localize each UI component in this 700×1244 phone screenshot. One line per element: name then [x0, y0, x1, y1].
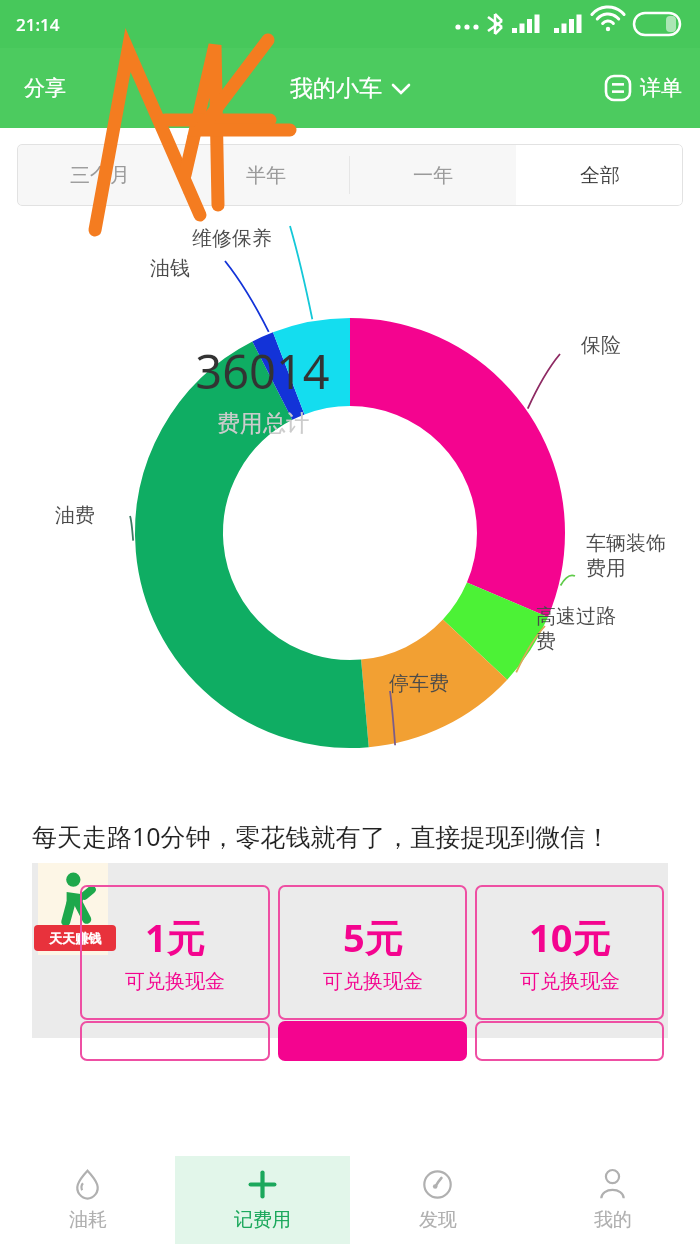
staticText: 三个月 — [70, 163, 130, 188]
staticText: 半年 — [246, 163, 286, 188]
staticText: 发现 — [419, 1208, 457, 1232]
staticText: 一年 — [413, 163, 453, 188]
staticText: 费 — [536, 629, 556, 654]
staticText: 车辆装饰 — [586, 531, 666, 556]
button[interactable]: 一年 — [349, 144, 516, 206]
staticText: 10元 — [529, 911, 611, 963]
staticText: 高速过路 — [536, 604, 616, 629]
button[interactable]: 全部 — [516, 144, 683, 206]
staticText: 记费用 — [234, 1208, 291, 1232]
button[interactable]: 发现 — [350, 1156, 525, 1244]
staticText: 油费 — [55, 503, 95, 528]
staticText: 油钱 — [150, 256, 190, 281]
button[interactable]: 我的小车 — [282, 66, 418, 111]
button[interactable]: 每天走路10分钟，零花钱就有了，直接提现到微信！ — [32, 819, 668, 853]
button[interactable]: 油耗 — [0, 1156, 175, 1244]
staticText: 停车费 — [389, 671, 449, 696]
staticText: 维修保养 — [192, 226, 272, 251]
staticText: 5元 — [343, 911, 403, 963]
staticText: 21:14 — [16, 13, 60, 36]
staticText: 可兑换现金 — [125, 969, 225, 994]
staticText: 可兑换现金 — [323, 969, 423, 994]
button[interactable]: 记费用 — [175, 1156, 350, 1244]
button[interactable]: 天天赚钱 — [32, 863, 668, 1038]
button[interactable]: 5元 — [278, 885, 467, 1020]
staticText: 油耗 — [69, 1208, 107, 1232]
button[interactable]: 我的 — [525, 1156, 700, 1244]
button[interactable]: 1元 — [80, 885, 270, 1020]
staticText: 1元 — [145, 911, 205, 963]
staticText: 详单 — [640, 75, 682, 101]
button[interactable]: 分享 — [0, 61, 90, 115]
staticText: 费用 — [586, 556, 626, 581]
button[interactable]: 半年 — [183, 144, 349, 206]
staticText: 我的小车 — [290, 74, 382, 103]
staticText: 36014 — [195, 339, 330, 403]
staticText: 我的 — [594, 1208, 632, 1232]
staticText: 费用总计 — [217, 409, 309, 438]
staticText: 分享 — [24, 75, 66, 101]
staticText: 可兑换现金 — [520, 969, 620, 994]
staticText: 保险 — [581, 333, 621, 358]
staticText: 天天赚钱 — [49, 930, 101, 946]
button[interactable]: 三个月 — [17, 144, 183, 206]
staticText: 全部 — [580, 163, 620, 188]
button[interactable]: 详单 — [587, 63, 700, 113]
button[interactable]: 10元 — [475, 885, 664, 1020]
